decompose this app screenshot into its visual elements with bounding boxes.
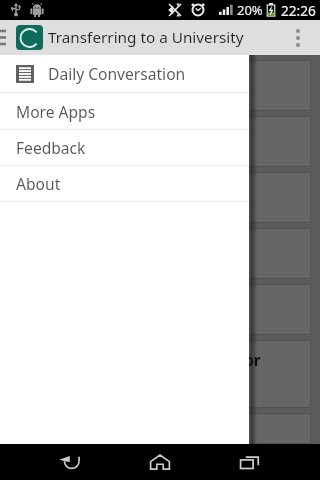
staticText: Are you transferring this year or next y… xyxy=(16,350,261,391)
staticText: 22:26 xyxy=(281,1,316,20)
staticText: More Apps xyxy=(16,101,96,122)
staticText: Daily Conversation xyxy=(48,63,186,84)
button[interactable]: Feedback xyxy=(0,130,249,165)
staticText: Transferring to a University xyxy=(48,27,244,48)
button[interactable]: Do you like the campus there? xyxy=(5,285,310,334)
button[interactable]: Which university do you like xyxy=(5,229,310,278)
staticText: 20% xyxy=(237,1,263,19)
button[interactable]: Home xyxy=(107,444,213,480)
button[interactable]: How many credits do you take xyxy=(5,173,310,222)
staticText: How many credits do you take xyxy=(16,183,246,204)
button[interactable]: Open navigation drawer xyxy=(0,20,8,55)
button[interactable]: Are you transferring this year or next y… xyxy=(5,341,310,407)
staticText: Feedback xyxy=(16,137,86,158)
staticText: Do you have a major? xyxy=(16,71,179,92)
button[interactable]: More Apps xyxy=(0,93,249,129)
button[interactable]: What classes are you taking? xyxy=(5,117,310,166)
button[interactable]: Recent apps xyxy=(213,444,320,480)
button[interactable]: Daily Conversation xyxy=(0,55,249,92)
button[interactable]: Back xyxy=(0,444,107,480)
staticText: About xyxy=(16,173,61,194)
button[interactable]: What is your GPA? xyxy=(5,414,310,443)
button[interactable]: About xyxy=(0,166,249,201)
staticText: What classes are you taking? xyxy=(16,127,235,148)
button[interactable]: Do you have a major? xyxy=(5,61,310,110)
button[interactable]: More options xyxy=(276,20,320,55)
